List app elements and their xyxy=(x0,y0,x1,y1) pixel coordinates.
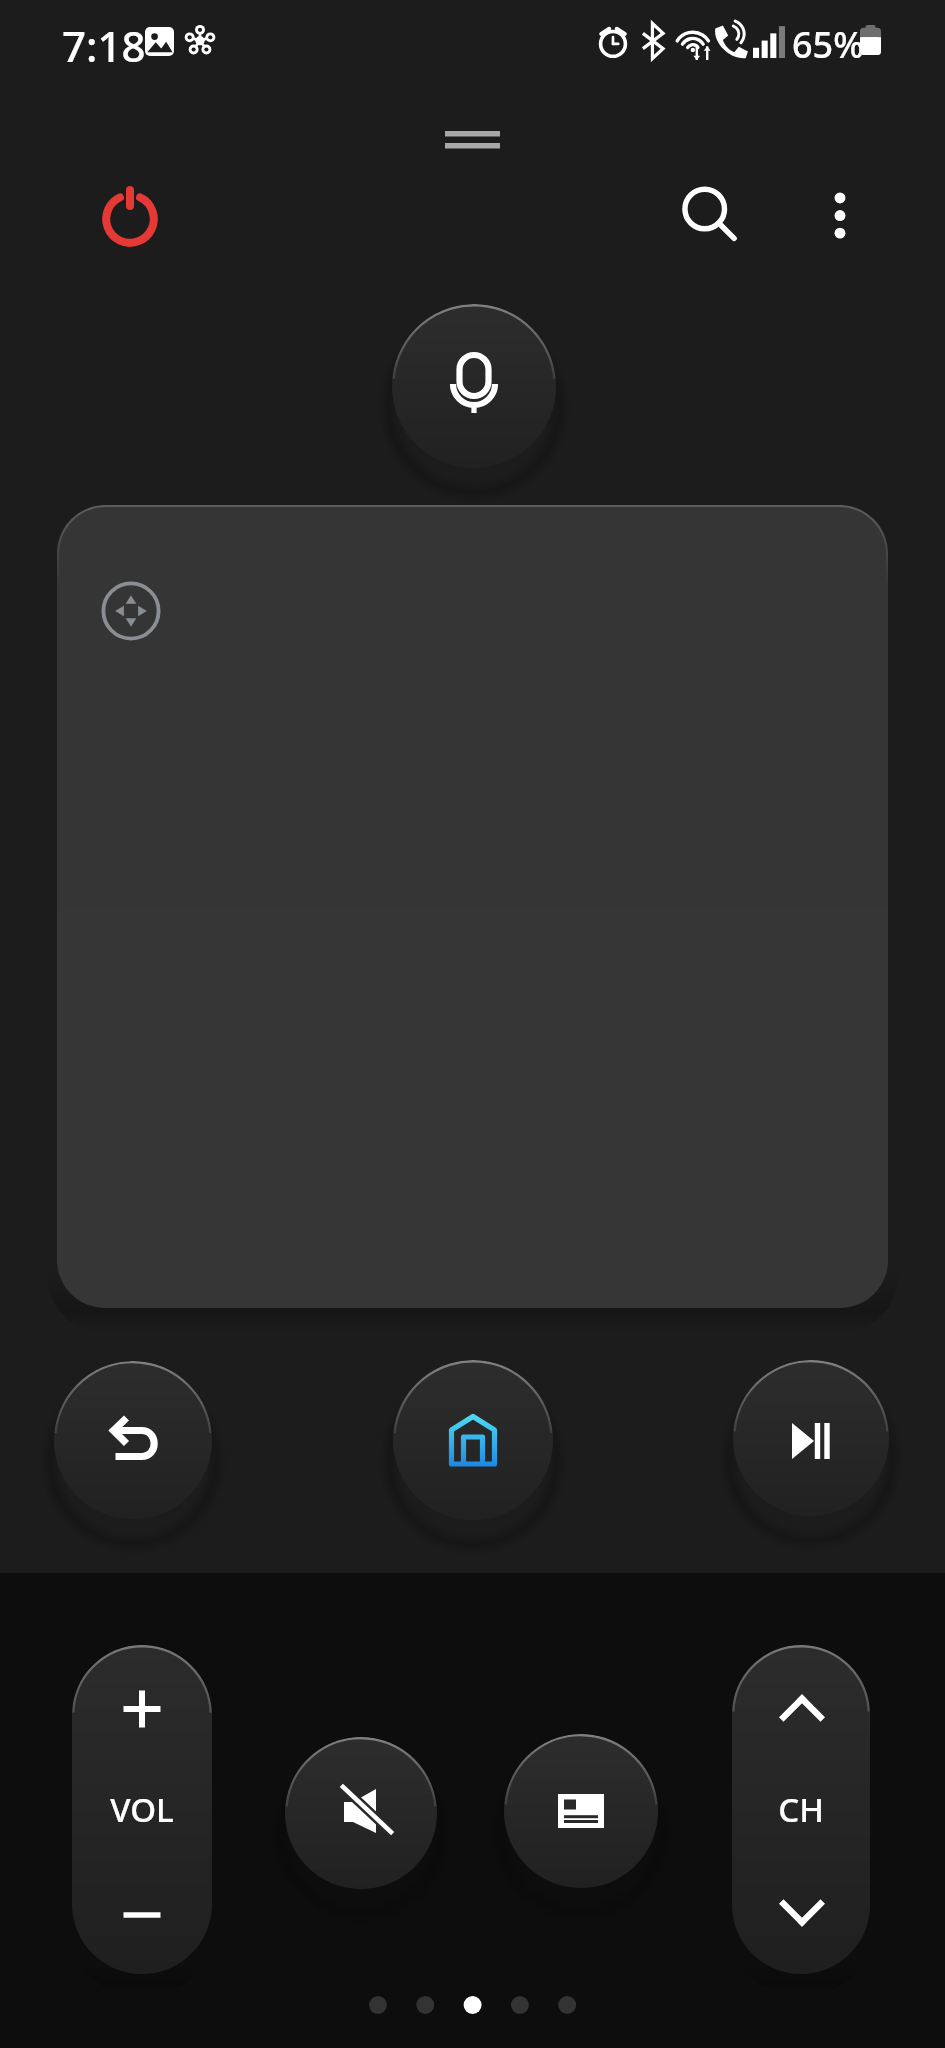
button[interactable]: Play or pause xyxy=(733,1360,889,1516)
staticText: VOL xyxy=(110,1787,174,1832)
button[interactable]: Home xyxy=(393,1360,553,1520)
button[interactable]: Volume xyxy=(72,1645,212,1974)
button[interactable]: Mute xyxy=(285,1737,437,1889)
button[interactable]: Search xyxy=(666,172,754,260)
button[interactable]: Power xyxy=(86,175,174,263)
button[interactable]: Channel xyxy=(732,1645,870,1974)
button[interactable]: Closed captions xyxy=(504,1734,658,1888)
button[interactable]: More options xyxy=(796,172,884,260)
button[interactable]: Back xyxy=(54,1361,212,1519)
staticText: 7:18 xyxy=(62,17,146,74)
staticText: 65% xyxy=(792,20,864,69)
button[interactable]: Touchpad xyxy=(57,505,888,1308)
staticText: CH xyxy=(778,1787,824,1832)
button[interactable]: Voice search xyxy=(392,304,556,468)
